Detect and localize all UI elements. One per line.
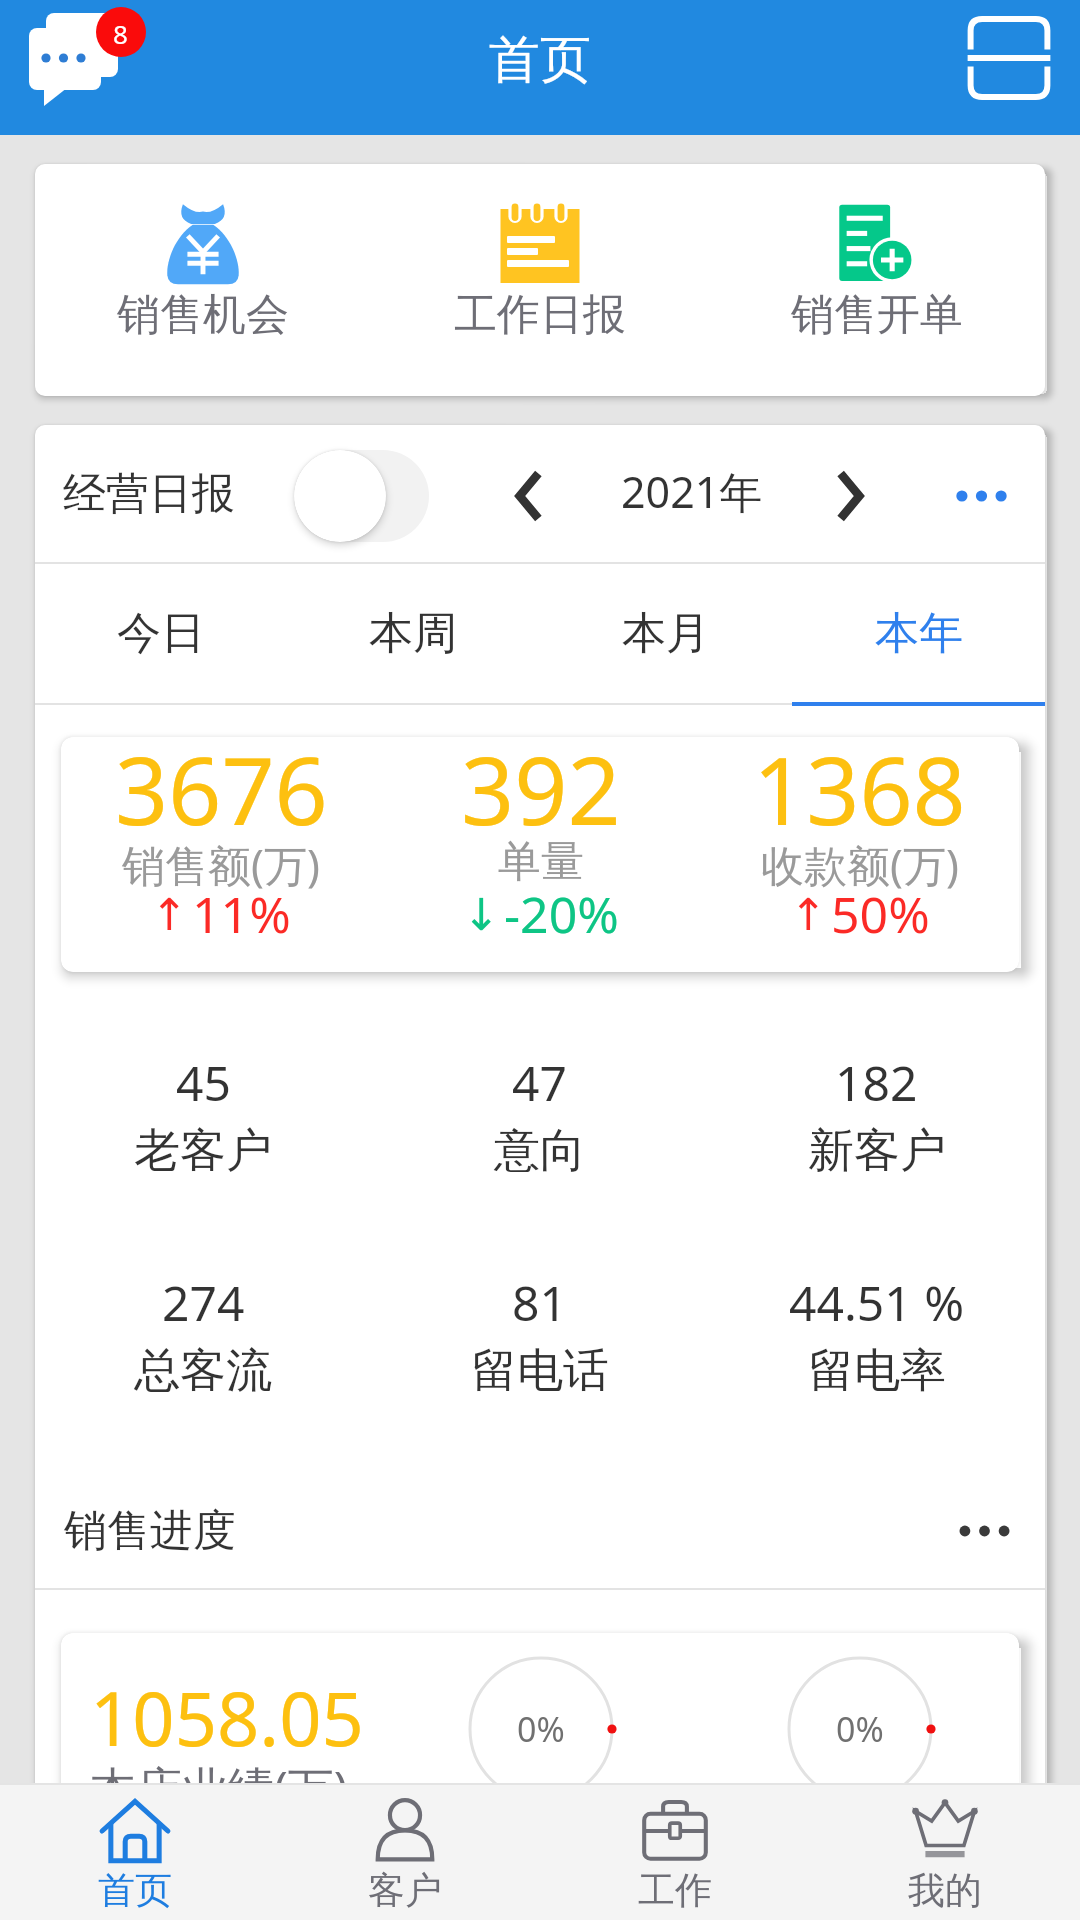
button[interactable]: 182 (708, 1050, 1045, 1180)
staticText: 本年 (875, 606, 963, 661)
staticText: 销售进度 (64, 1504, 236, 1558)
button[interactable]: 本月 (539, 564, 792, 702)
staticText: 0% (836, 1706, 884, 1752)
staticText: 3676 (115, 737, 328, 853)
staticText: 销售机会 (117, 288, 289, 342)
staticText: 本店业绩(万) (90, 1756, 348, 1819)
staticText: 收款额(万) (761, 835, 959, 894)
button[interactable]: 1368 (700, 737, 1019, 972)
staticText: 意向 (494, 1122, 586, 1180)
staticText: 81 (512, 1270, 567, 1335)
staticText: 总客流 (134, 1342, 272, 1400)
button[interactable]: 47 (371, 1050, 708, 1180)
button[interactable]: 销售机会 (35, 164, 371, 396)
button[interactable]: Scan (961, 8, 1057, 108)
staticText: 274 (162, 1270, 245, 1335)
staticText: 经营日报 (63, 467, 235, 521)
staticText: 销售开单 (791, 288, 963, 342)
button[interactable]: 我的 (810, 1785, 1080, 1920)
staticText: 50% (831, 880, 930, 948)
staticText: 44.51 % (789, 1270, 965, 1335)
staticText: 8 (113, 16, 128, 51)
staticText: 392 (461, 737, 621, 853)
staticText: 销售额(万) (122, 835, 320, 894)
staticText: 今日 (117, 606, 205, 661)
staticText: 留电率 (808, 1342, 946, 1400)
button[interactable]: 销售进度 (35, 1481, 1045, 1581)
staticText: 首页 (98, 1867, 172, 1914)
button[interactable]: Next year (811, 468, 889, 524)
staticText: ↓ (463, 889, 500, 940)
staticText: 11% (192, 880, 291, 948)
staticText: 本周 (369, 606, 457, 661)
staticText: 182 (835, 1050, 918, 1115)
staticText: 留电话 (471, 1342, 609, 1400)
staticText: 新客户 (808, 1122, 946, 1180)
staticText: 客户 (368, 1867, 442, 1914)
button[interactable]: 44.51 % (708, 1270, 1045, 1400)
staticText: 1058.05 (90, 1667, 364, 1768)
staticText: 0% (517, 1706, 565, 1752)
staticText: 45 (176, 1050, 231, 1115)
staticText: 我的 (908, 1867, 982, 1914)
staticText: 单量 (498, 835, 584, 889)
button[interactable]: 274 (35, 1270, 371, 1400)
button[interactable]: 首页 (0, 1785, 270, 1920)
staticText: 本月 (622, 606, 710, 661)
button[interactable]: 销售开单 (708, 164, 1045, 396)
staticText: 47 (512, 1050, 567, 1115)
button[interactable]: 本年 (792, 564, 1045, 702)
staticText: 工作 (638, 1867, 712, 1914)
button[interactable]: 工作日报 (371, 164, 708, 396)
button[interactable]: 81 (371, 1270, 708, 1400)
button[interactable]: Previous year (490, 468, 568, 524)
button[interactable]: Messages (24, 10, 154, 115)
button[interactable]: 客户 (270, 1785, 540, 1920)
button[interactable]: 本周 (287, 564, 539, 702)
button[interactable]: 392 (381, 737, 700, 972)
staticText: -20% (504, 880, 619, 948)
button[interactable]: 3676 (61, 737, 381, 972)
staticText: 2021年 (621, 462, 763, 521)
button[interactable]: Toggle daily report (294, 450, 429, 542)
staticText: ↑ (790, 889, 827, 940)
staticText: 老客户 (134, 1122, 272, 1180)
button[interactable]: More options (933, 448, 1029, 544)
staticText: ↑ (151, 889, 188, 940)
staticText: 首页 (489, 28, 591, 92)
button[interactable]: 工作 (540, 1785, 810, 1920)
staticText: 1368 (753, 737, 966, 853)
button[interactable]: 今日 (35, 564, 287, 702)
button[interactable]: 45 (35, 1050, 371, 1180)
staticText: 工作日报 (454, 288, 626, 342)
